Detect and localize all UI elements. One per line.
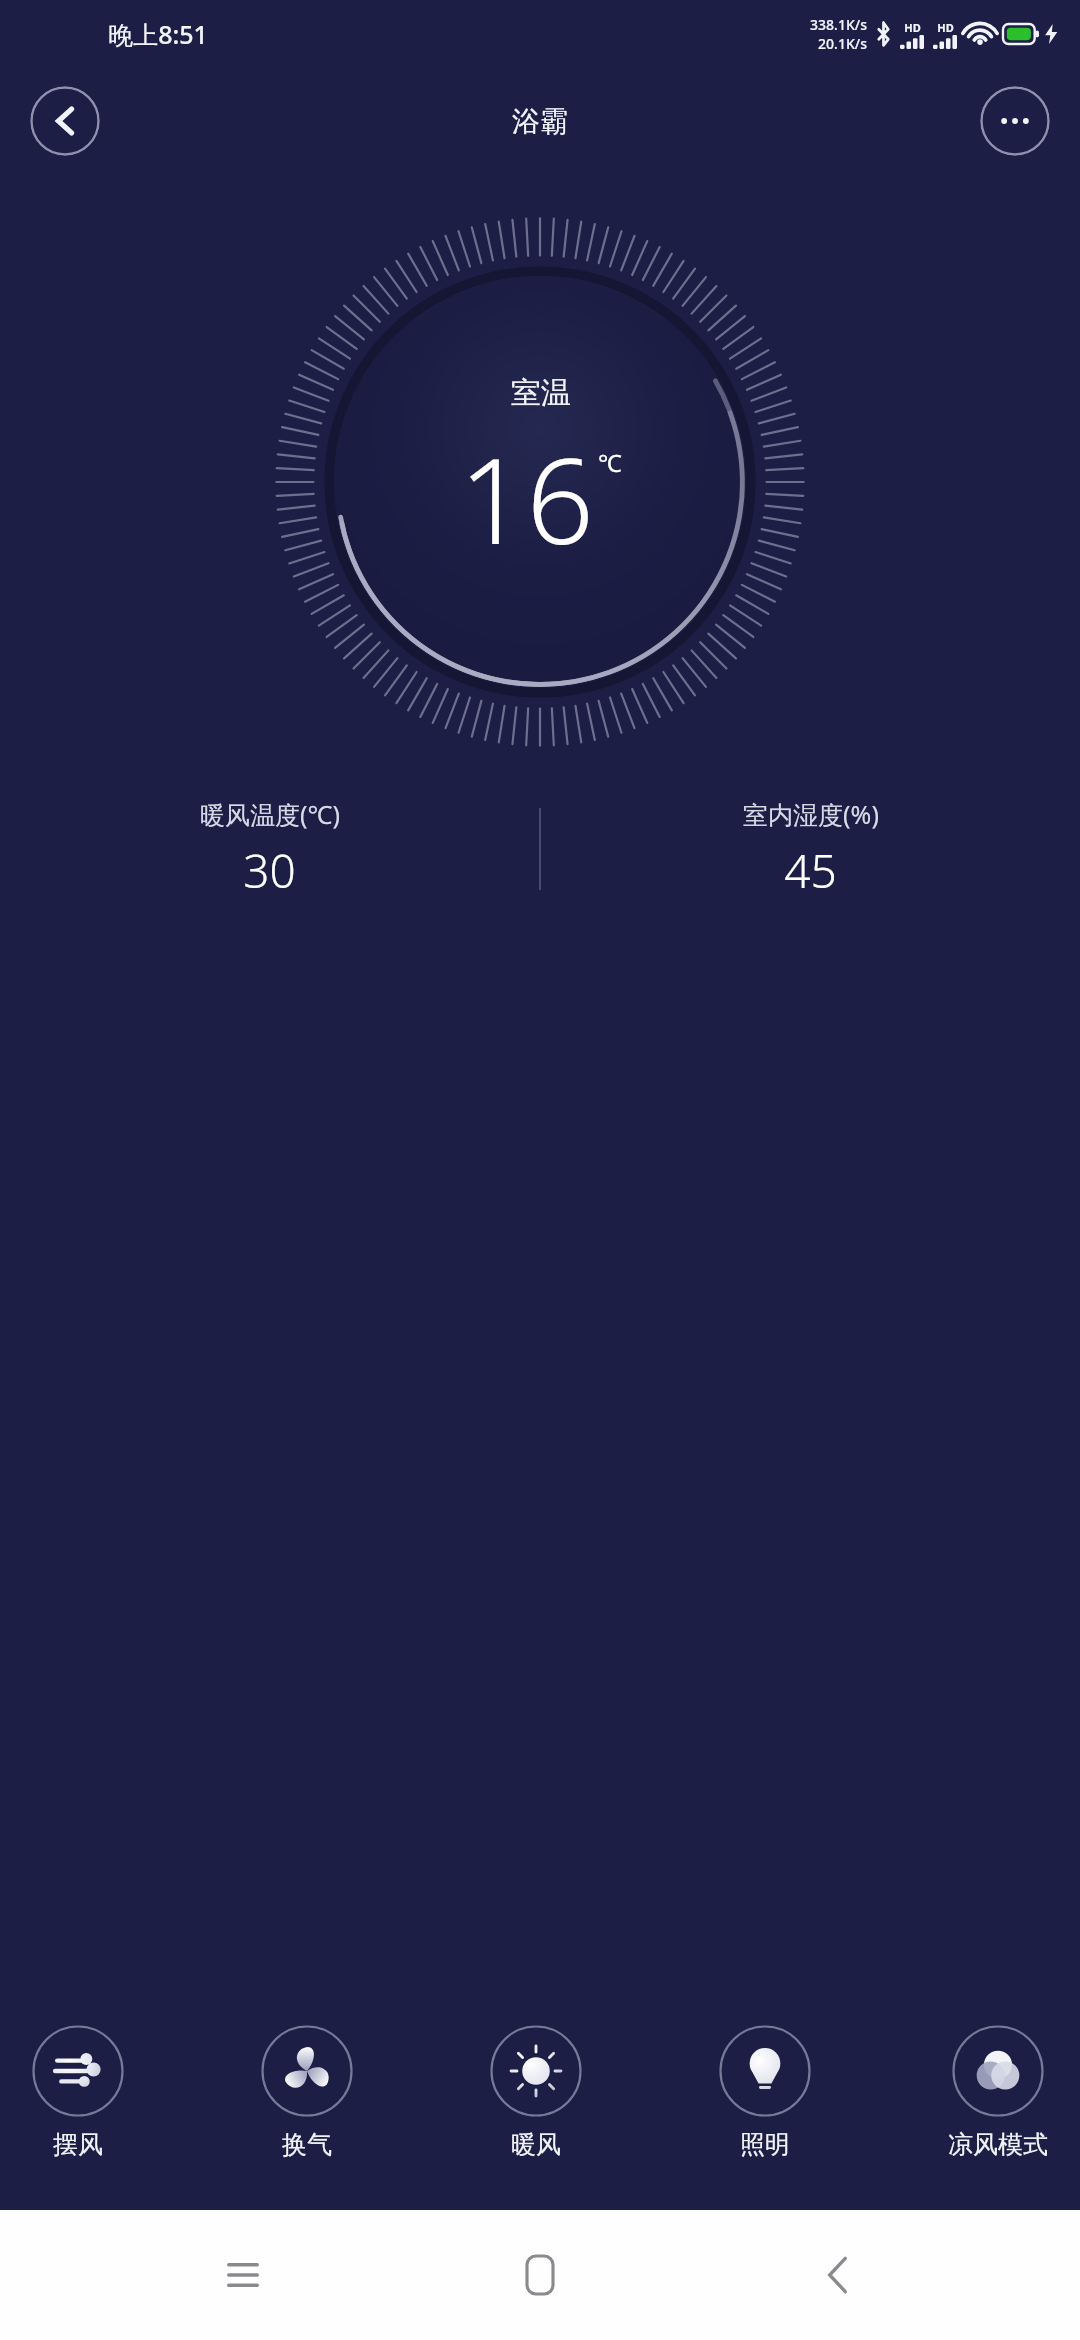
staticText: HD <box>904 20 921 35</box>
staticText: 晚上8:51 <box>108 17 208 51</box>
button[interactable]: More options <box>980 86 1050 156</box>
staticText: 16 <box>459 418 594 579</box>
button[interactable]: Back <box>783 2220 893 2330</box>
staticText: 45 <box>784 839 837 902</box>
button[interactable]: 凉风模式 <box>942 2021 1054 2164</box>
staticText: 暖风 <box>511 2129 561 2160</box>
staticText: 室内湿度(%) <box>743 797 879 831</box>
staticText: 摆风 <box>53 2129 103 2160</box>
button[interactable]: 室内湿度(%) <box>541 797 1080 902</box>
staticText: 338.1K/s <box>810 15 867 34</box>
button[interactable]: 暖风 <box>484 2021 588 2164</box>
staticText: 暖风温度(℃) <box>200 797 340 831</box>
button[interactable]: Home <box>485 2220 595 2330</box>
staticText: 照明 <box>740 2129 790 2160</box>
staticText: HD <box>937 20 954 35</box>
button[interactable]: 暖风温度(℃) <box>0 797 539 902</box>
button[interactable]: 照明 <box>713 2021 817 2164</box>
staticText: 20.1K/s <box>818 34 867 53</box>
button[interactable]: Recent apps <box>188 2220 298 2330</box>
button[interactable]: 摆风 <box>26 2021 130 2164</box>
staticText: 换气 <box>282 2129 332 2160</box>
button[interactable]: Back <box>30 86 100 156</box>
staticText: 凉风模式 <box>948 2129 1048 2160</box>
staticText: ℃ <box>598 446 622 479</box>
staticText: 室温 <box>511 374 571 412</box>
button[interactable]: 换气 <box>255 2021 359 2164</box>
staticText: 30 <box>243 839 296 902</box>
staticText: 浴霸 <box>512 104 568 139</box>
